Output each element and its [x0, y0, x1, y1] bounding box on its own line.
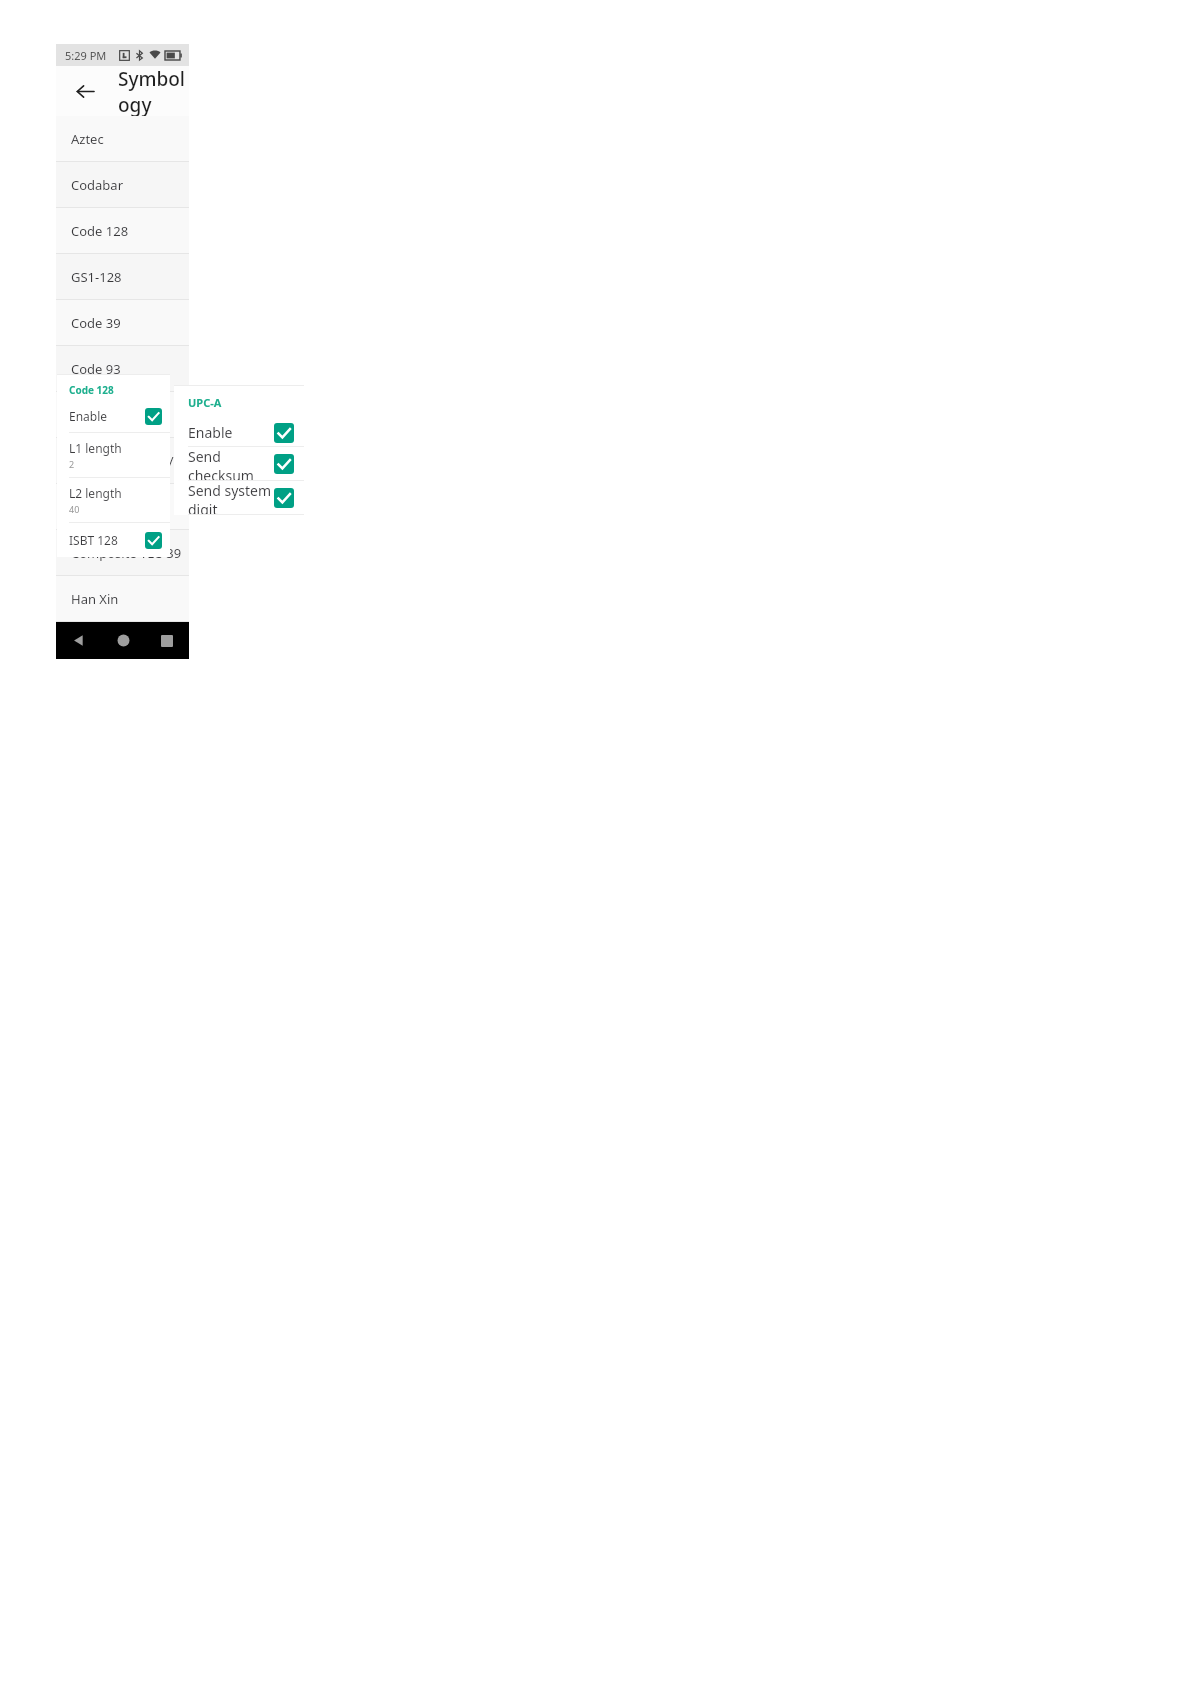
staticText: 5:29 PM — [65, 48, 107, 63]
button[interactable]: Composite TLC-39 — [56, 530, 189, 575]
button[interactable]: Code 11 — [56, 392, 189, 437]
button[interactable]: ISBT 128 — [57, 523, 170, 557]
button[interactable]: Recent apps — [145, 622, 189, 659]
staticText: L1 length — [69, 440, 122, 456]
staticText: Enable — [69, 408, 145, 424]
button[interactable]: Back — [70, 76, 100, 106]
staticText: Code 93 — [71, 360, 121, 378]
button[interactable]: Codabar — [56, 162, 189, 207]
staticText: Code 128 — [69, 383, 114, 397]
staticText: L2 length — [69, 485, 122, 501]
button[interactable]: Checked — [274, 488, 294, 508]
button[interactable]: Send system digit — [174, 481, 304, 514]
staticText: Composite CC-C — [71, 498, 169, 516]
button[interactable]: Checked — [145, 408, 162, 425]
staticText: Han Xin — [71, 590, 119, 608]
button[interactable]: Home — [101, 622, 145, 659]
staticText: Code 39 — [71, 314, 121, 332]
button[interactable]: Composite CC-C — [56, 484, 189, 529]
button[interactable]: Enable — [174, 419, 304, 446]
button[interactable]: Composite CC-A/B — [56, 438, 189, 483]
staticText: Composite TLC-39 — [71, 544, 182, 562]
staticText: Code 128 — [71, 222, 129, 240]
button[interactable]: Enable — [57, 404, 170, 428]
button[interactable]: GS1-128 — [56, 254, 189, 299]
button[interactable]: Checked — [145, 532, 162, 549]
staticText: Enable — [188, 423, 274, 442]
staticText: Aztec — [71, 130, 104, 148]
staticText: Composite CC-A/B — [71, 452, 183, 470]
staticText: UPC-A — [188, 395, 222, 410]
staticText: GS1-128 — [71, 268, 122, 286]
button[interactable]: Han Xin — [56, 576, 189, 621]
staticText: Code 11 — [71, 406, 121, 424]
staticText: ISBT 128 — [69, 532, 145, 548]
button[interactable]: Aztec — [56, 116, 189, 161]
staticText: 2 — [69, 458, 75, 470]
button[interactable]: Checked — [274, 423, 294, 443]
button[interactable]: Back — [56, 622, 101, 659]
button[interactable]: Send checksum — [174, 447, 304, 480]
button[interactable]: Code 128 — [56, 208, 189, 253]
button[interactable]: L1 length — [57, 433, 170, 477]
button[interactable]: Checked — [274, 454, 294, 474]
staticText: Symbology Settings — [118, 66, 189, 116]
button[interactable]: Code 39 — [56, 300, 189, 345]
button[interactable]: L2 length — [57, 478, 170, 522]
staticText: 40 — [69, 503, 80, 515]
staticText: Send checksum — [188, 447, 274, 480]
staticText: Send system digit — [188, 481, 274, 514]
button[interactable]: Code 93 — [56, 346, 189, 391]
staticText: Codabar — [71, 176, 124, 194]
